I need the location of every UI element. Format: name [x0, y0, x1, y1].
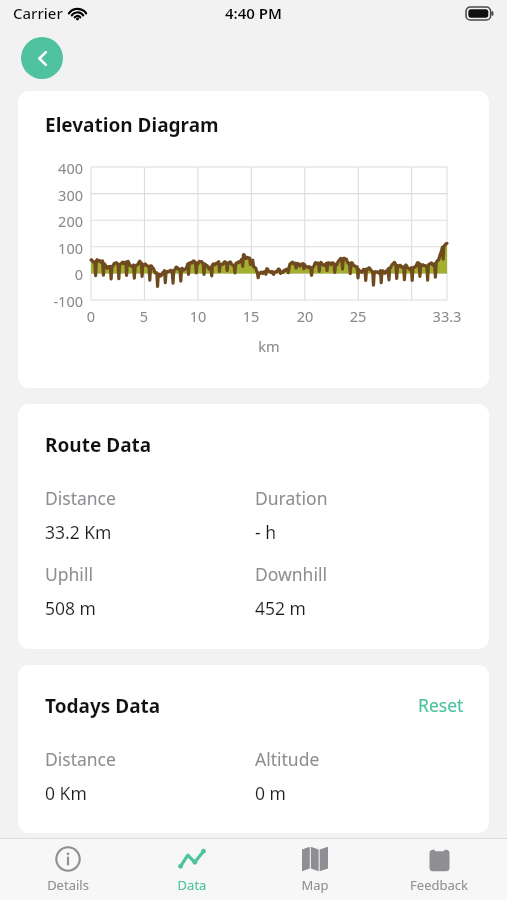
- staticText: Reset: [418, 693, 464, 717]
- staticText: Route Data: [45, 432, 152, 458]
- button[interactable]: Reset: [418, 693, 464, 717]
- staticText: Elevation Diagram: [45, 112, 219, 138]
- staticText: 20: [283, 306, 327, 326]
- staticText: Uphill: [45, 562, 93, 586]
- staticText: Todays Data: [45, 693, 161, 719]
- staticText: 5: [122, 306, 166, 326]
- staticText: Data: [136, 876, 248, 894]
- staticText: km: [69, 336, 469, 356]
- button[interactable]: Back: [21, 37, 63, 79]
- staticText: 10: [176, 306, 220, 326]
- staticText: 452 m: [255, 596, 306, 620]
- staticText: 400: [18, 158, 83, 178]
- staticText: Downhill: [255, 562, 327, 586]
- staticText: 4:40 PM: [225, 3, 282, 23]
- staticText: Distance: [45, 486, 116, 510]
- staticText: 508 m: [45, 596, 96, 620]
- staticText: 33.2 Km: [45, 520, 112, 544]
- button[interactable]: Feedback: [383, 839, 495, 900]
- staticText: 0: [18, 264, 83, 284]
- button[interactable]: Data: [136, 839, 248, 900]
- staticText: Carrier: [13, 3, 63, 23]
- staticText: Duration: [255, 486, 328, 510]
- staticText: 100: [18, 238, 83, 258]
- staticText: Feedback: [383, 876, 495, 894]
- staticText: Distance: [45, 747, 116, 771]
- staticText: 33.3: [425, 306, 469, 326]
- staticText: Map: [259, 876, 371, 894]
- staticText: 15: [229, 306, 273, 326]
- staticText: 0 Km: [45, 781, 87, 805]
- staticText: -100: [18, 291, 83, 311]
- staticText: 0: [69, 306, 113, 326]
- staticText: 25: [336, 306, 380, 326]
- button[interactable]: Details: [12, 839, 124, 900]
- button[interactable]: Map: [259, 839, 371, 900]
- staticText: 200: [18, 211, 83, 231]
- staticText: - h: [255, 520, 276, 544]
- staticText: Altitude: [255, 747, 320, 771]
- staticText: 300: [18, 185, 83, 205]
- staticText: Details: [12, 876, 124, 894]
- staticText: 0 m: [255, 781, 286, 805]
